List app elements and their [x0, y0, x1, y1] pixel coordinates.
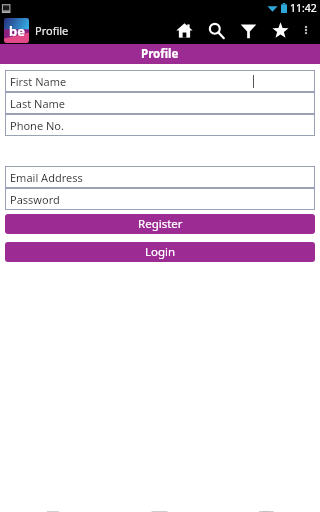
button[interactable]: Login — [5, 242, 315, 262]
button[interactable]: Phone No. — [5, 114, 315, 136]
staticText: Email Address — [10, 170, 83, 185]
staticText: Phone No. — [10, 118, 64, 133]
staticText: Register — [138, 216, 183, 232]
staticText: First Name — [10, 74, 67, 89]
staticText: Login — [145, 244, 176, 260]
staticText: Profile — [141, 46, 179, 62]
button[interactable]: Last Name — [5, 92, 315, 114]
button[interactable]: Register — [5, 214, 315, 234]
button[interactable]: Filter — [232, 16, 264, 44]
staticText: Password — [10, 192, 60, 207]
button[interactable]: be logo — [4, 18, 29, 43]
button[interactable]: Favorites — [264, 16, 296, 44]
staticText: be — [9, 22, 25, 40]
staticText: Profile — [35, 23, 69, 38]
staticText: Last Name — [10, 96, 66, 111]
button[interactable]: Email Address — [5, 166, 315, 188]
button[interactable]: Password — [5, 188, 315, 210]
button[interactable]: Home — [168, 16, 200, 44]
staticText: 11:42 — [290, 1, 317, 15]
button[interactable]: More options — [296, 16, 316, 44]
button[interactable]: Search — [200, 16, 232, 44]
button[interactable]: First Name — [5, 70, 315, 92]
